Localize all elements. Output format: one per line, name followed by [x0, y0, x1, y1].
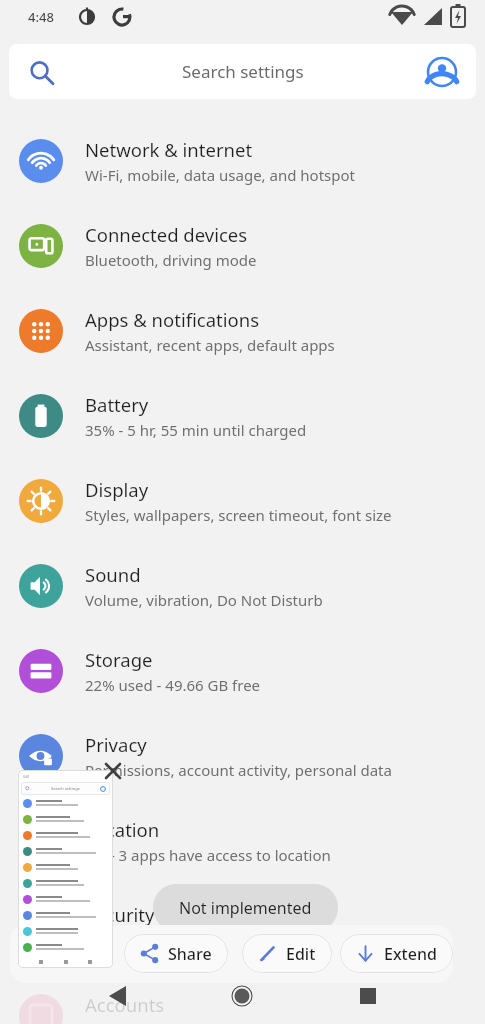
staticText: Search settings: [182, 60, 304, 83]
staticText: Storage: [85, 647, 153, 672]
button[interactable]: Apps & notifications: [0, 288, 485, 373]
staticText: Share: [168, 943, 212, 965]
button[interactable]: Extend: [340, 934, 453, 973]
staticText: Edit: [286, 943, 316, 965]
staticText: Wi-Fi, mobile, data usage, and hotspot: [85, 165, 355, 185]
button[interactable]: Location: [0, 798, 485, 883]
button[interactable]: Home: [222, 976, 262, 1016]
button[interactable]: Share: [124, 934, 228, 973]
staticText: 22% used - 49.66 GB free: [85, 675, 261, 695]
staticText: Not implemented: [179, 897, 312, 919]
button[interactable]: Battery: [0, 373, 485, 458]
button[interactable]: Recent apps: [348, 976, 388, 1016]
staticText: On - 3 apps have access to location: [85, 845, 331, 865]
staticText: Battery: [85, 392, 149, 417]
button[interactable]: Back: [100, 976, 140, 1016]
button[interactable]: Account: [426, 56, 458, 88]
button[interactable]: Search: [9, 44, 476, 99]
staticText: Network & internet: [85, 137, 253, 162]
button[interactable]: Sound: [0, 543, 485, 628]
staticText: Extend: [384, 943, 437, 965]
button[interactable]: Edit: [242, 934, 332, 973]
staticText: Privacy: [85, 732, 147, 757]
staticText: 4:48: [23, 775, 29, 779]
staticText: Connected devices: [85, 222, 248, 247]
staticText: Location: [85, 817, 160, 842]
button[interactable]: Network & internet: [0, 118, 485, 203]
staticText: Volume, vibration, Do Not Disturb: [85, 590, 323, 610]
staticText: Security: [85, 902, 155, 927]
staticText: Search settings: [51, 786, 80, 791]
staticText: Bluetooth, driving mode: [85, 250, 257, 270]
button[interactable]: Storage: [0, 628, 485, 713]
button[interactable]: 4:48: [18, 770, 113, 968]
other: Search: [29, 60, 53, 84]
staticText: Assistant, recent apps, default apps: [85, 335, 335, 355]
staticText: 4:48: [28, 8, 54, 26]
staticText: Sound: [85, 562, 141, 587]
staticText: Apps & notifications: [85, 307, 260, 332]
button[interactable]: Security: [0, 883, 485, 968]
button[interactable]: Connected devices: [0, 203, 485, 288]
staticText: Play Protect, screen lock: [85, 930, 255, 950]
button[interactable]: Display: [0, 458, 485, 543]
button[interactable]: Privacy: [0, 713, 485, 798]
button[interactable]: Dismiss screenshot: [98, 756, 128, 786]
staticText: Styles, wallpapers, screen timeout, font…: [85, 505, 392, 525]
staticText: Display: [85, 477, 149, 502]
staticText: Accounts: [85, 992, 165, 1017]
staticText: Permissions, account activity, personal …: [85, 760, 392, 780]
staticText: 35% - 5 hr, 55 min until charged: [85, 420, 307, 440]
